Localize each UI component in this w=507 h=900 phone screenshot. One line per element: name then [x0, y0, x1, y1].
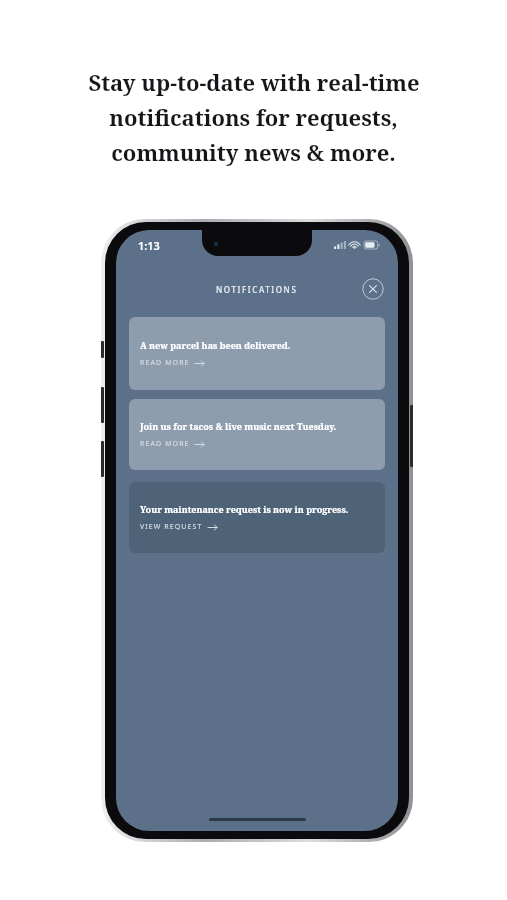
staticText: READ MORE	[140, 358, 190, 368]
button[interactable]: Close	[362, 278, 384, 300]
staticText: A new parcel has been delivered.	[140, 339, 291, 351]
button[interactable]: A new parcel has been delivered.	[129, 317, 385, 390]
button[interactable]: Join us for tacos & live music next Tues…	[129, 399, 385, 470]
staticText: VIEW REQUEST	[140, 522, 203, 532]
staticText: Your maintenance request is now in progr…	[140, 503, 349, 515]
button[interactable]: Your maintenance request is now in progr…	[129, 482, 385, 553]
staticText: notifications for requests,	[109, 102, 398, 132]
staticText: community news & more.	[111, 137, 396, 167]
staticText: NOTIFICATIONS	[216, 284, 298, 295]
staticText: Join us for tacos & live music next Tues…	[140, 420, 337, 432]
staticText: 1:13	[138, 238, 160, 253]
staticText: READ MORE	[140, 439, 190, 449]
staticText: Stay up-to-date with real-time	[88, 67, 420, 97]
